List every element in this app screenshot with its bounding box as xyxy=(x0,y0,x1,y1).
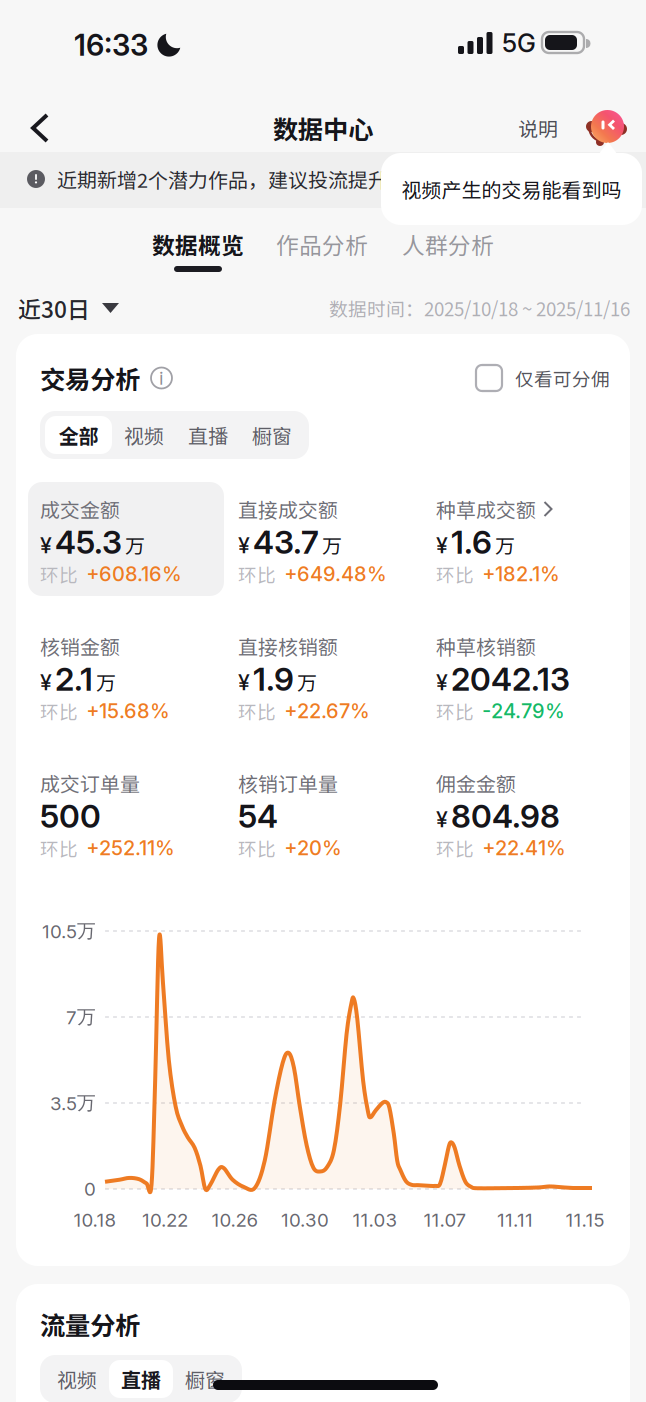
staticText: +22.41% xyxy=(482,836,566,860)
button[interactable]: 仅看可分佣 xyxy=(476,364,610,391)
staticText: 视频产生的交易能看到吗 xyxy=(401,174,621,203)
button[interactable]: 种草核销额 xyxy=(436,633,636,723)
button[interactable]: 佣金金额 xyxy=(436,770,636,860)
button[interactable]: 视频 xyxy=(45,1360,109,1398)
staticText: 数据概览 xyxy=(152,228,244,260)
staticText: 10.22 xyxy=(142,1209,188,1231)
button[interactable]: 直播 xyxy=(176,416,240,454)
button[interactable]: 核销订单量 xyxy=(238,770,438,860)
staticText: 仅看可分佣 xyxy=(515,364,610,391)
staticText: 万 xyxy=(96,667,116,696)
staticText: 环比 xyxy=(436,697,474,724)
staticText: 数据中心 xyxy=(273,110,373,146)
staticText: 500 xyxy=(40,797,101,835)
button[interactable]: 说明 xyxy=(500,100,576,156)
staticText: ¥ xyxy=(436,532,448,558)
staticText: 10.5万 xyxy=(42,919,96,943)
button[interactable]: 近30日 xyxy=(18,288,198,328)
button[interactable]: 种草成交额 xyxy=(436,496,636,586)
staticText: 0 xyxy=(84,1178,96,1200)
staticText: 近期新增2个潜力作品，建议投流提升 xyxy=(57,164,388,193)
button[interactable]: 视频 xyxy=(112,416,176,454)
staticText: 橱窗 xyxy=(252,420,292,449)
staticText: 流量分析 xyxy=(40,1306,140,1342)
staticText: 直接成交额 xyxy=(238,494,338,523)
staticText: ¥ xyxy=(40,532,52,558)
staticText: 全部 xyxy=(58,420,98,449)
staticText: 43.7 xyxy=(253,523,319,561)
staticText: +15.68% xyxy=(86,699,170,723)
staticText: ¥ xyxy=(436,806,448,832)
staticText: 视频 xyxy=(124,420,164,449)
staticText: 橱窗 xyxy=(185,1364,225,1393)
staticText: 直接核销额 xyxy=(238,631,338,660)
staticText: 环比 xyxy=(40,560,78,587)
button[interactable]: 作品分析 xyxy=(256,224,388,264)
staticText: 环比 xyxy=(436,834,474,861)
staticText: ¥ xyxy=(436,669,448,695)
button[interactable]: 橱窗 xyxy=(173,1360,237,1398)
staticText: 核销订单量 xyxy=(238,768,338,797)
button[interactable]: 返回 xyxy=(2,96,78,160)
button[interactable]: 直播 xyxy=(109,1360,173,1398)
staticText: +608.16% xyxy=(86,562,182,586)
staticText: 万 xyxy=(322,530,342,559)
button[interactable]: 客服 xyxy=(585,105,631,151)
staticText: 万 xyxy=(297,667,317,696)
staticText: 成交订单量 xyxy=(40,768,140,797)
button[interactable]: 全部 xyxy=(45,416,112,454)
staticText: 数据时间：2025/10/18 ~ 2025/11/16 xyxy=(329,294,630,321)
staticText: 54 xyxy=(238,797,278,835)
staticText: +252.11% xyxy=(86,836,175,860)
button[interactable]: 核销金额 xyxy=(40,633,240,723)
button[interactable]: 数据概览 xyxy=(132,224,264,264)
staticText: 种草成交额 xyxy=(436,494,536,523)
button[interactable]: 直接核销额 xyxy=(238,633,438,723)
staticText: 成交金额 xyxy=(40,494,120,523)
staticText: 环比 xyxy=(238,697,276,724)
staticText: 11.07 xyxy=(423,1209,466,1231)
staticText: ¥ xyxy=(238,669,250,695)
staticText: 环比 xyxy=(40,697,78,724)
staticText: 45.3 xyxy=(55,523,122,561)
staticText: 环比 xyxy=(40,834,78,861)
staticText: 1.9 xyxy=(253,660,294,698)
staticText: +649.48% xyxy=(284,562,387,586)
staticText: 10.30 xyxy=(281,1209,329,1231)
staticText: 佣金金额 xyxy=(436,768,516,797)
staticText: 11.11 xyxy=(497,1209,533,1231)
staticText: 作品分析 xyxy=(276,228,368,260)
button[interactable]: 成交订单量 xyxy=(40,770,240,860)
staticText: +22.67% xyxy=(284,699,370,723)
staticText: 直播 xyxy=(188,420,228,449)
staticText: 11.03 xyxy=(352,1209,397,1231)
staticText: 16:33 xyxy=(74,27,148,63)
staticText: 环比 xyxy=(238,834,276,861)
staticText: 视频 xyxy=(57,1364,97,1393)
staticText: 说明 xyxy=(518,113,558,142)
staticText: 10.18 xyxy=(73,1209,116,1231)
staticText: 人群分析 xyxy=(402,228,494,260)
staticText: 环比 xyxy=(436,560,474,587)
staticText: 10.26 xyxy=(211,1209,258,1231)
staticText: 804.98 xyxy=(451,797,560,835)
staticText: 7万 xyxy=(66,1005,96,1029)
staticText: 环比 xyxy=(238,560,276,587)
staticText: 直播 xyxy=(121,1364,161,1393)
staticText: 核销金额 xyxy=(40,631,120,660)
staticText: 万 xyxy=(125,530,145,559)
staticText: 交易分析 xyxy=(40,360,140,396)
staticText: ¥ xyxy=(40,669,52,695)
button[interactable]: 直接成交额 xyxy=(238,496,438,586)
staticText: 3.5万 xyxy=(50,1091,96,1115)
button[interactable]: 橱窗 xyxy=(240,416,304,454)
staticText: -24.79% xyxy=(482,699,565,723)
staticText: 11.15 xyxy=(565,1209,604,1231)
button[interactable]: 人群分析 xyxy=(382,224,514,264)
staticText: i xyxy=(159,367,164,389)
staticText: ¥ xyxy=(238,532,250,558)
staticText: 2.1 xyxy=(55,660,93,698)
staticText: 万 xyxy=(495,530,515,559)
staticText: +20% xyxy=(284,836,342,860)
button[interactable]: 成交金额 xyxy=(40,496,240,586)
